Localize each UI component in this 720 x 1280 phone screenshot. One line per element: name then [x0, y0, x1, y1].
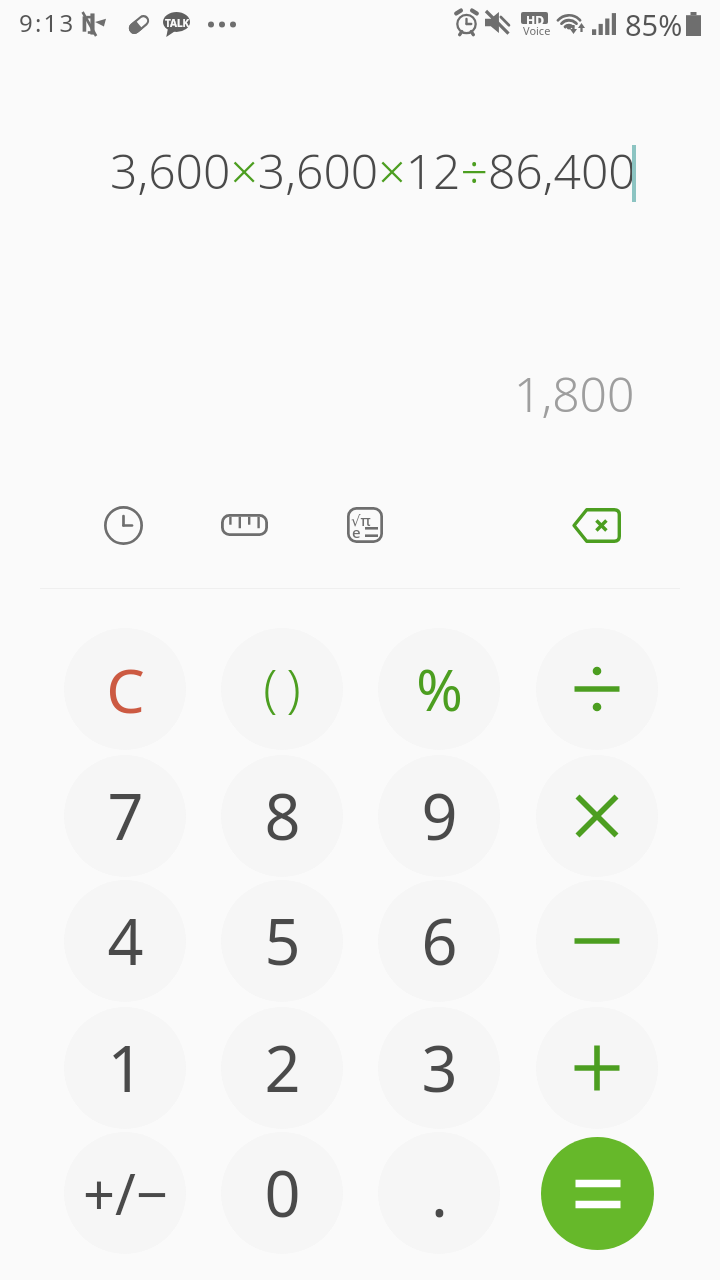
- staticText: +/−: [83, 1155, 168, 1231]
- button[interactable]: 4: [64, 880, 186, 1002]
- button[interactable]: History: [88, 494, 158, 556]
- button[interactable]: 1: [64, 1007, 186, 1129]
- button[interactable]: Equals: [541, 1137, 654, 1250]
- button[interactable]: 0: [221, 1132, 343, 1254]
- button[interactable]: Plus: [536, 1007, 658, 1129]
- button[interactable]: (): [221, 628, 343, 750]
- button[interactable]: Backspace: [561, 494, 631, 556]
- staticText: 3: [421, 1025, 458, 1111]
- staticText: C: [106, 648, 145, 731]
- staticText: HD: [526, 12, 544, 24]
- staticText: 4: [107, 898, 144, 984]
- button[interactable]: 9: [378, 755, 500, 877]
- button[interactable]: Unit converter: [209, 494, 279, 556]
- staticText: 85%: [625, 5, 683, 44]
- staticText: Voice: [523, 23, 551, 38]
- staticText: 1: [107, 1025, 144, 1111]
- button[interactable]: %: [378, 628, 500, 750]
- staticText: (): [263, 652, 310, 721]
- staticText: 9:13: [19, 6, 76, 39]
- staticText: 2: [264, 1025, 301, 1111]
- staticText: 1,800: [514, 361, 635, 426]
- button[interactable]: Minus: [536, 880, 658, 1002]
- staticText: .: [431, 1150, 448, 1236]
- staticText: %: [416, 651, 463, 727]
- staticText: TALK: [165, 16, 190, 30]
- button[interactable]: C: [64, 628, 186, 750]
- staticText: 9: [421, 773, 458, 859]
- staticText: 7: [107, 773, 144, 859]
- button[interactable]: 3: [378, 1007, 500, 1129]
- button[interactable]: 6: [378, 880, 500, 1002]
- button[interactable]: +/−: [64, 1132, 186, 1254]
- button[interactable]: .: [378, 1132, 500, 1254]
- button[interactable]: 8: [221, 755, 343, 877]
- staticText: 5: [264, 898, 301, 984]
- staticText: 0: [264, 1150, 301, 1236]
- staticText: e: [352, 522, 361, 542]
- button[interactable]: Scientific calculator: [330, 494, 400, 556]
- button[interactable]: 7: [64, 755, 186, 877]
- staticText: 6: [421, 898, 458, 984]
- button[interactable]: 2: [221, 1007, 343, 1129]
- button[interactable]: Divide: [536, 628, 658, 750]
- button[interactable]: Multiply: [536, 755, 658, 877]
- staticText: 8: [264, 773, 301, 859]
- staticText: 3,600×3,600×12÷86,400: [110, 138, 636, 198]
- button[interactable]: 5: [221, 880, 343, 1002]
- staticText: √π: [351, 510, 371, 530]
